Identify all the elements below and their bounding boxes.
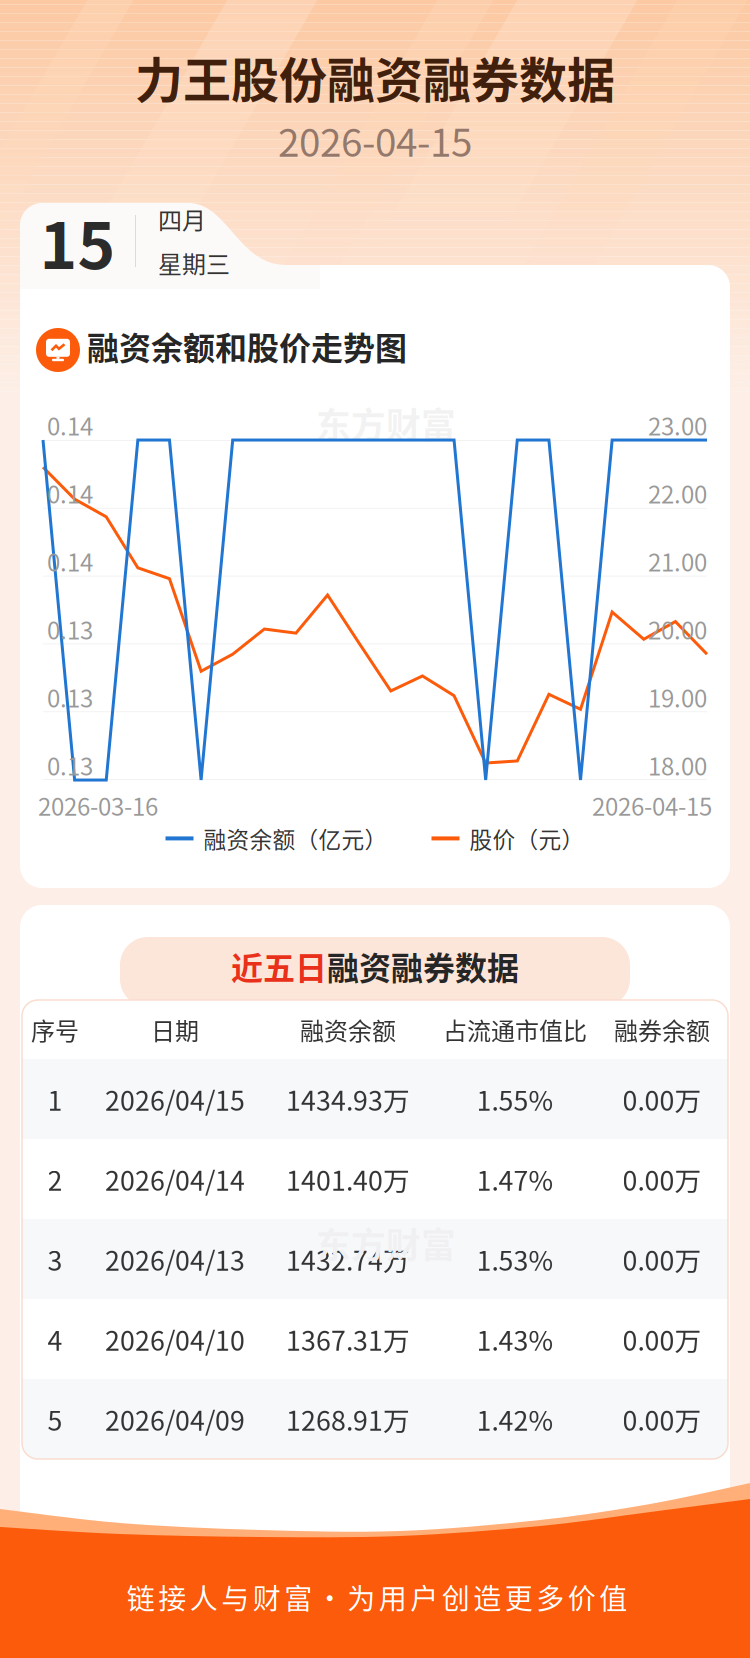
staticText: 融资融券数据 xyxy=(327,943,519,989)
staticText: 15 xyxy=(39,195,115,287)
staticText: 0.00万 xyxy=(622,1240,701,1278)
button[interactable]: 3 xyxy=(22,1219,728,1299)
staticText: 2026/04/10 xyxy=(105,1320,245,1358)
staticText: 0.13 xyxy=(47,748,93,782)
button[interactable]: 15 xyxy=(20,203,282,279)
staticText: 2026/04/13 xyxy=(105,1240,245,1278)
staticText: 18.00 xyxy=(648,748,707,782)
staticText: 0.14 xyxy=(47,476,93,510)
staticText: 1.55% xyxy=(476,1080,553,1118)
staticText: 1.47% xyxy=(476,1160,553,1198)
staticText: 四月 xyxy=(158,202,206,236)
staticText: 1.53% xyxy=(476,1240,553,1278)
staticText: 2026-04-15 xyxy=(278,112,472,168)
staticText: 1401.40万 xyxy=(286,1160,410,1198)
staticText: 0.14 xyxy=(47,544,93,578)
staticText: 2026/04/09 xyxy=(105,1400,245,1438)
button[interactable]: 2 xyxy=(22,1139,728,1219)
staticText: 19.00 xyxy=(648,680,707,714)
staticText: 1367.31万 xyxy=(286,1320,410,1358)
staticText: 日期 xyxy=(151,1012,199,1047)
staticText: 融券余额 xyxy=(614,1012,710,1047)
staticText: 4 xyxy=(47,1320,62,1358)
staticText: 23.00 xyxy=(648,408,707,442)
staticText: 序号 xyxy=(31,1012,79,1047)
staticText: 链接人与财富·为用户创造更多价值 xyxy=(127,1577,627,1617)
staticText: 星期三 xyxy=(158,245,230,280)
staticText: 0.00万 xyxy=(622,1080,701,1118)
staticText: 2 xyxy=(47,1160,62,1198)
staticText: 股价（元） xyxy=(469,822,584,855)
staticText: 近五日 xyxy=(231,943,327,989)
staticText: 20.00 xyxy=(648,612,707,646)
staticText: 0.13 xyxy=(47,680,93,714)
staticText: 融资余额 xyxy=(300,1012,396,1047)
staticText: 0.14 xyxy=(47,408,93,442)
staticText: 2026-03-16 xyxy=(38,788,158,823)
button[interactable]: 融资余额和股价走势图 xyxy=(36,328,436,376)
staticText: 融资余额（亿元） xyxy=(203,822,387,855)
button[interactable]: 4 xyxy=(22,1299,728,1379)
staticText: 1.42% xyxy=(476,1400,553,1438)
staticText: 0.13 xyxy=(47,612,93,646)
staticText: 3 xyxy=(47,1240,62,1278)
staticText: 2026/04/14 xyxy=(105,1160,245,1198)
button[interactable]: 1 xyxy=(22,1059,728,1139)
staticText: 融资余额和股价走势图 xyxy=(87,323,407,369)
staticText: 0.00万 xyxy=(622,1320,701,1358)
staticText: 5 xyxy=(47,1400,62,1438)
staticText: 力王股份融资融券数据 xyxy=(135,42,615,111)
staticText: 东方财富 xyxy=(316,398,456,448)
staticText: 0.00万 xyxy=(622,1160,701,1198)
staticText: 占流通市值比 xyxy=(443,1012,587,1047)
staticText: 2026-04-15 xyxy=(592,788,712,823)
staticText: 21.00 xyxy=(648,544,707,578)
staticText: 1.43% xyxy=(476,1320,553,1358)
staticText: 22.00 xyxy=(648,476,707,510)
staticText: 1268.91万 xyxy=(286,1400,410,1438)
staticText: 1 xyxy=(47,1080,62,1118)
staticText: 东方财富 xyxy=(316,1218,456,1268)
staticText: 1434.93万 xyxy=(286,1080,410,1118)
staticText: 2026/04/15 xyxy=(105,1080,245,1118)
staticText: 1432.74万 xyxy=(286,1240,410,1278)
staticText: 0.00万 xyxy=(622,1400,701,1438)
button[interactable]: 链接人与财富·为用户创造更多价值 xyxy=(2,1542,750,1652)
button[interactable]: 5 xyxy=(22,1379,728,1459)
